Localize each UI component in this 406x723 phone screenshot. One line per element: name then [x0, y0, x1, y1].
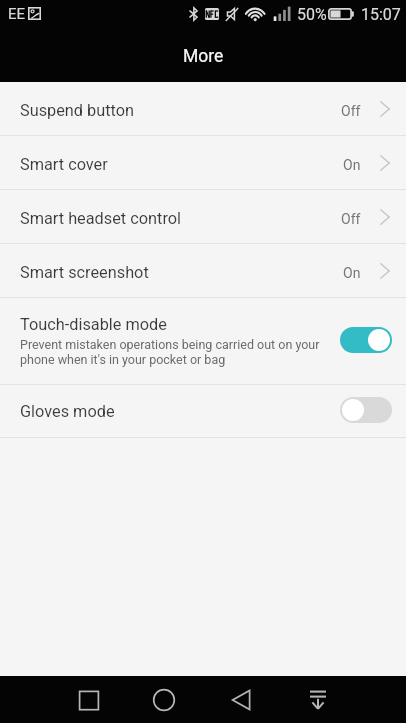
- staticText: EE: [8, 5, 26, 23]
- staticText: Off: [341, 211, 361, 227]
- button[interactable]: Hide keyboard: [296, 678, 340, 722]
- button[interactable]: Smart screenshot: [0, 244, 406, 297]
- staticText: 50%: [297, 5, 327, 24]
- button[interactable]: Smart cover: [0, 136, 406, 189]
- staticText: Smart cover: [20, 155, 108, 174]
- staticText: phone when it's in your pocket or bag: [20, 352, 226, 367]
- staticText: Smart headset control: [20, 209, 182, 228]
- staticText: Off: [341, 103, 361, 119]
- staticText: Touch-disable mode: [20, 315, 167, 334]
- button[interactable]: Home: [142, 678, 186, 722]
- button[interactable]: Back: [219, 678, 263, 722]
- staticText: On: [343, 157, 361, 173]
- button[interactable]: Suspend button: [0, 82, 406, 135]
- staticText: More: [183, 46, 224, 67]
- button[interactable]: Switch on: [340, 327, 392, 353]
- staticText: On: [343, 265, 361, 281]
- button[interactable]: Smart headset control: [0, 190, 406, 243]
- staticText: Suspend button: [20, 101, 135, 120]
- staticText: Gloves mode: [20, 402, 115, 421]
- button[interactable]: Switch off: [340, 397, 392, 423]
- button[interactable]: Gloves mode: [0, 385, 406, 437]
- staticText: Prevent mistaken operations being carrie…: [20, 337, 320, 352]
- button[interactable]: Touch-disable mode: [0, 298, 406, 384]
- staticText: Smart screenshot: [20, 263, 149, 282]
- button[interactable]: Recents: [66, 678, 110, 722]
- staticText: 15:07: [361, 5, 401, 24]
